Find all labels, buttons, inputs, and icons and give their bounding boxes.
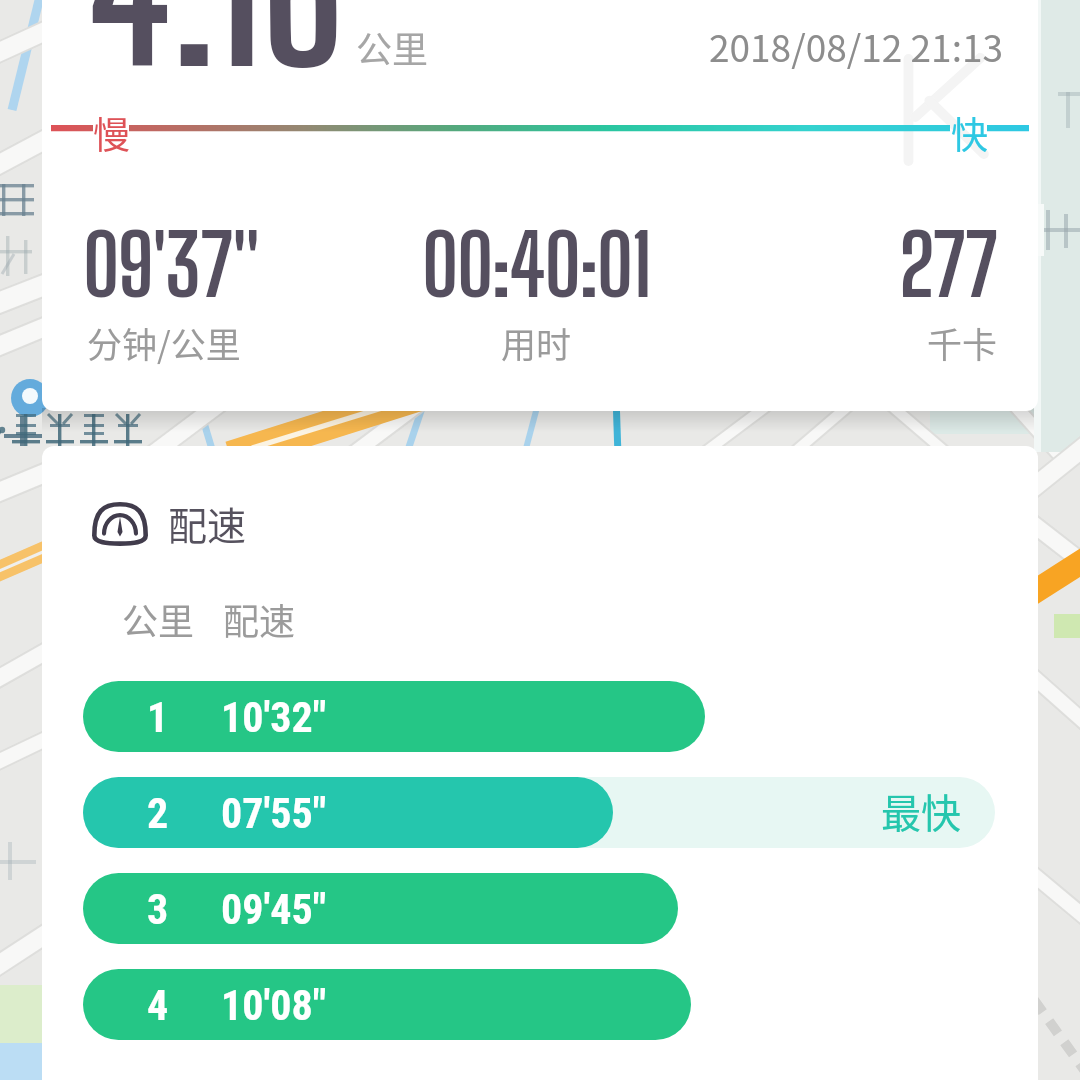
- staticText: 10'08": [221, 981, 327, 1030]
- staticText: 2: [147, 789, 169, 838]
- staticText: 千卡: [927, 317, 998, 368]
- staticText: 配速: [168, 495, 247, 551]
- staticText: 10'32": [221, 693, 327, 742]
- staticText: 用时: [501, 317, 572, 368]
- staticText: 09'37": [83, 215, 259, 314]
- button[interactable]: 3: [83, 873, 995, 944]
- button[interactable]: 最快: [83, 777, 995, 848]
- button[interactable]: 配速: [223, 593, 296, 645]
- staticText: 4.16: [87, 0, 344, 107]
- staticText: 公里: [356, 21, 429, 73]
- button[interactable]: 4: [83, 969, 995, 1040]
- staticText: 1: [147, 693, 169, 742]
- staticText: 配速: [223, 593, 296, 645]
- staticText: 07'55": [221, 789, 327, 838]
- button[interactable]: 公里: [122, 593, 195, 645]
- staticText: 最快: [881, 782, 961, 840]
- staticText: 00:40:01: [422, 215, 650, 314]
- staticText: 慢: [93, 106, 130, 160]
- staticText: 分钟/公里: [87, 317, 241, 368]
- staticText: 277: [899, 215, 998, 314]
- staticText: 快: [951, 106, 988, 160]
- staticText: 3: [147, 885, 169, 934]
- button[interactable]: 配速: [78, 486, 328, 556]
- staticText: 2018/08/12 21:13: [709, 19, 1004, 73]
- staticText: 公里: [122, 593, 195, 645]
- button[interactable]: 1: [83, 681, 995, 752]
- staticText: 4: [147, 981, 169, 1030]
- staticText: 09'45": [221, 885, 327, 934]
